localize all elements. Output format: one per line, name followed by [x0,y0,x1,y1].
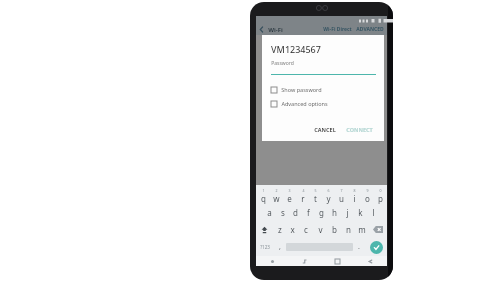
button[interactable]: CANCEL [311,124,339,135]
staticText: l [372,207,375,218]
button[interactable]: Keyboard hide [256,256,288,266]
button[interactable]: Show password [271,86,376,93]
button[interactable]: g [315,204,328,221]
button[interactable]: , [274,238,286,256]
staticText: 0 [379,188,382,193]
staticText: Wi-Fi [268,26,283,34]
staticText: t [314,193,317,204]
staticText: 5 [314,188,317,193]
staticText: w [273,193,280,204]
staticText: Advanced options [281,100,328,107]
staticText: 4 [302,188,305,193]
button[interactable]: Shift [256,221,273,238]
staticText: v [318,224,323,235]
button[interactable]: CONNECT [343,124,376,135]
staticText: g [319,207,324,218]
button[interactable]: j [341,204,354,221]
button[interactable]: f [302,204,315,221]
staticText: y [326,193,331,204]
button[interactable]: 6 [322,187,335,204]
button[interactable]: 2 [270,187,283,204]
button[interactable]: 3 [283,187,296,204]
staticText: e [287,193,292,204]
staticText: a [267,207,272,218]
button[interactable]: Done [370,241,383,254]
staticText: 1 [262,188,265,193]
staticText: m [358,224,366,235]
staticText: o [365,193,370,204]
button[interactable]: a [263,204,276,221]
button[interactable]: z [273,221,286,238]
staticText: 8 [353,188,356,193]
staticText: x [290,224,295,235]
staticText: VM1234567 [271,43,321,55]
button[interactable]: Back [256,24,267,35]
staticText: , [279,242,281,252]
staticText: 2 [275,188,278,193]
button[interactable]: 7 [335,187,348,204]
staticText: ?123 [260,244,270,250]
staticText: z [278,224,282,235]
staticText: 3 [288,188,291,193]
button[interactable]: s [276,204,289,221]
staticText: i [353,193,356,204]
button[interactable]: 8 [348,187,361,204]
button[interactable]: Back [354,256,387,266]
staticText: u [339,193,344,204]
button[interactable]: k [354,204,367,221]
staticText: 6 [327,188,330,193]
button[interactable]: v [313,221,327,238]
button[interactable]: Delete [369,221,387,238]
button[interactable]: 5 [309,187,322,204]
button[interactable]: 0 [374,187,387,204]
button[interactable]: 1 [256,187,270,204]
button[interactable]: h [328,204,341,221]
button[interactable]: b [327,221,341,238]
staticText: s [281,207,285,218]
staticText: f [307,207,310,218]
button[interactable]: Home [321,256,354,266]
staticText: c [304,224,308,235]
staticText: d [293,207,298,218]
button[interactable]: 9 [361,187,374,204]
staticText: 9 [366,188,369,193]
button[interactable]: l [367,204,380,221]
button[interactable]: ?123 [256,238,274,256]
button[interactable]: Advanced options [271,100,376,107]
staticText: 7 [340,188,343,193]
button[interactable]: 4 [296,187,309,204]
button[interactable]: x [286,221,299,238]
button[interactable]: Wi-Fi Direct [321,26,354,33]
staticText: b [332,224,337,235]
button[interactable]: m [355,221,369,238]
staticText: r [301,193,305,204]
staticText: j [346,207,349,218]
staticText: p [378,193,383,204]
staticText: Password [271,60,294,67]
staticText: h [332,207,337,218]
staticText: Show password [281,86,322,93]
staticText: . [358,242,360,252]
button[interactable]: . [353,238,365,256]
button[interactable]: c [299,221,313,238]
staticText: n [346,224,351,235]
button[interactable]: Recents [288,256,321,266]
staticText: q [261,193,266,204]
button[interactable]: d [289,204,302,221]
staticText: k [358,207,363,218]
button[interactable]: n [341,221,355,238]
button[interactable]: ADVANCED [354,26,387,33]
